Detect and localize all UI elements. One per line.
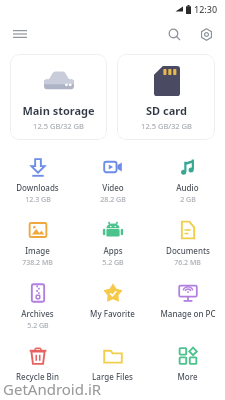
button[interactable]: Menu — [8, 22, 32, 46]
staticText: Image — [25, 245, 50, 256]
button[interactable]: Documents — [150, 217, 225, 270]
staticText: My Favorite — [90, 308, 135, 319]
staticText: 738.2 MB — [22, 258, 53, 268]
staticText: SD card — [146, 103, 187, 118]
staticText: GetAndroid.iR — [3, 379, 102, 399]
staticText: Audio — [176, 182, 199, 193]
button[interactable]: Apps — [75, 217, 150, 270]
staticText: Recycle Bin — [16, 371, 59, 382]
button[interactable]: Recycle Bin — [0, 343, 75, 384]
button[interactable]: Downloads — [0, 154, 75, 207]
staticText: 12:30 — [194, 3, 218, 15]
staticText: 12.5 GB/32 GB — [141, 121, 192, 131]
staticText: Manage on PC — [160, 308, 216, 319]
staticText: More — [177, 371, 198, 382]
button[interactable]: Large Files — [75, 343, 150, 384]
staticText: Documents — [166, 245, 210, 256]
staticText: 5.2 GB — [102, 258, 124, 268]
staticText: Archives — [21, 308, 54, 319]
button[interactable]: Image — [0, 217, 75, 270]
staticText: 28.2 GB — [100, 195, 126, 205]
staticText: Main storage — [22, 103, 95, 118]
button[interactable]: SD card — [117, 54, 215, 140]
button[interactable]: Manage on PC — [150, 280, 225, 321]
button[interactable]: My Favorite — [75, 280, 150, 321]
staticText: 12.5 GB/32 GB — [33, 121, 84, 131]
staticText: Video — [102, 182, 124, 193]
staticText: Downloads — [16, 182, 59, 193]
staticText: Large Files — [92, 371, 133, 382]
button[interactable]: More — [150, 343, 225, 384]
staticText: 5.2 GB — [27, 321, 49, 331]
staticText: 76.2 MB — [174, 258, 201, 268]
button[interactable]: Video — [75, 154, 150, 207]
staticText: 12.3 GB — [25, 195, 51, 205]
staticText: 2 GB — [180, 195, 196, 205]
button[interactable]: Audio — [150, 154, 225, 207]
button[interactable]: Search — [161, 21, 187, 47]
staticText: Apps — [103, 245, 123, 256]
button[interactable]: Settings — [193, 21, 219, 47]
button[interactable]: Main storage — [10, 54, 107, 140]
button[interactable]: Archives — [0, 280, 75, 333]
